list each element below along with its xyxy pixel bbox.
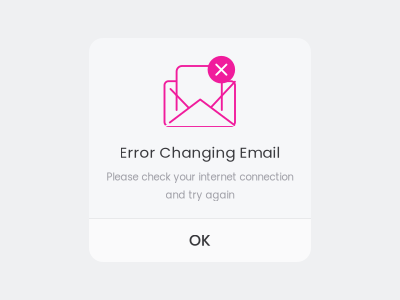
staticText: and try again: [165, 188, 234, 202]
staticText: Error Changing Email: [119, 142, 280, 163]
staticText: OK: [189, 230, 211, 251]
staticText: Please check your internet connection: [106, 170, 293, 184]
button[interactable]: OK: [89, 219, 311, 262]
